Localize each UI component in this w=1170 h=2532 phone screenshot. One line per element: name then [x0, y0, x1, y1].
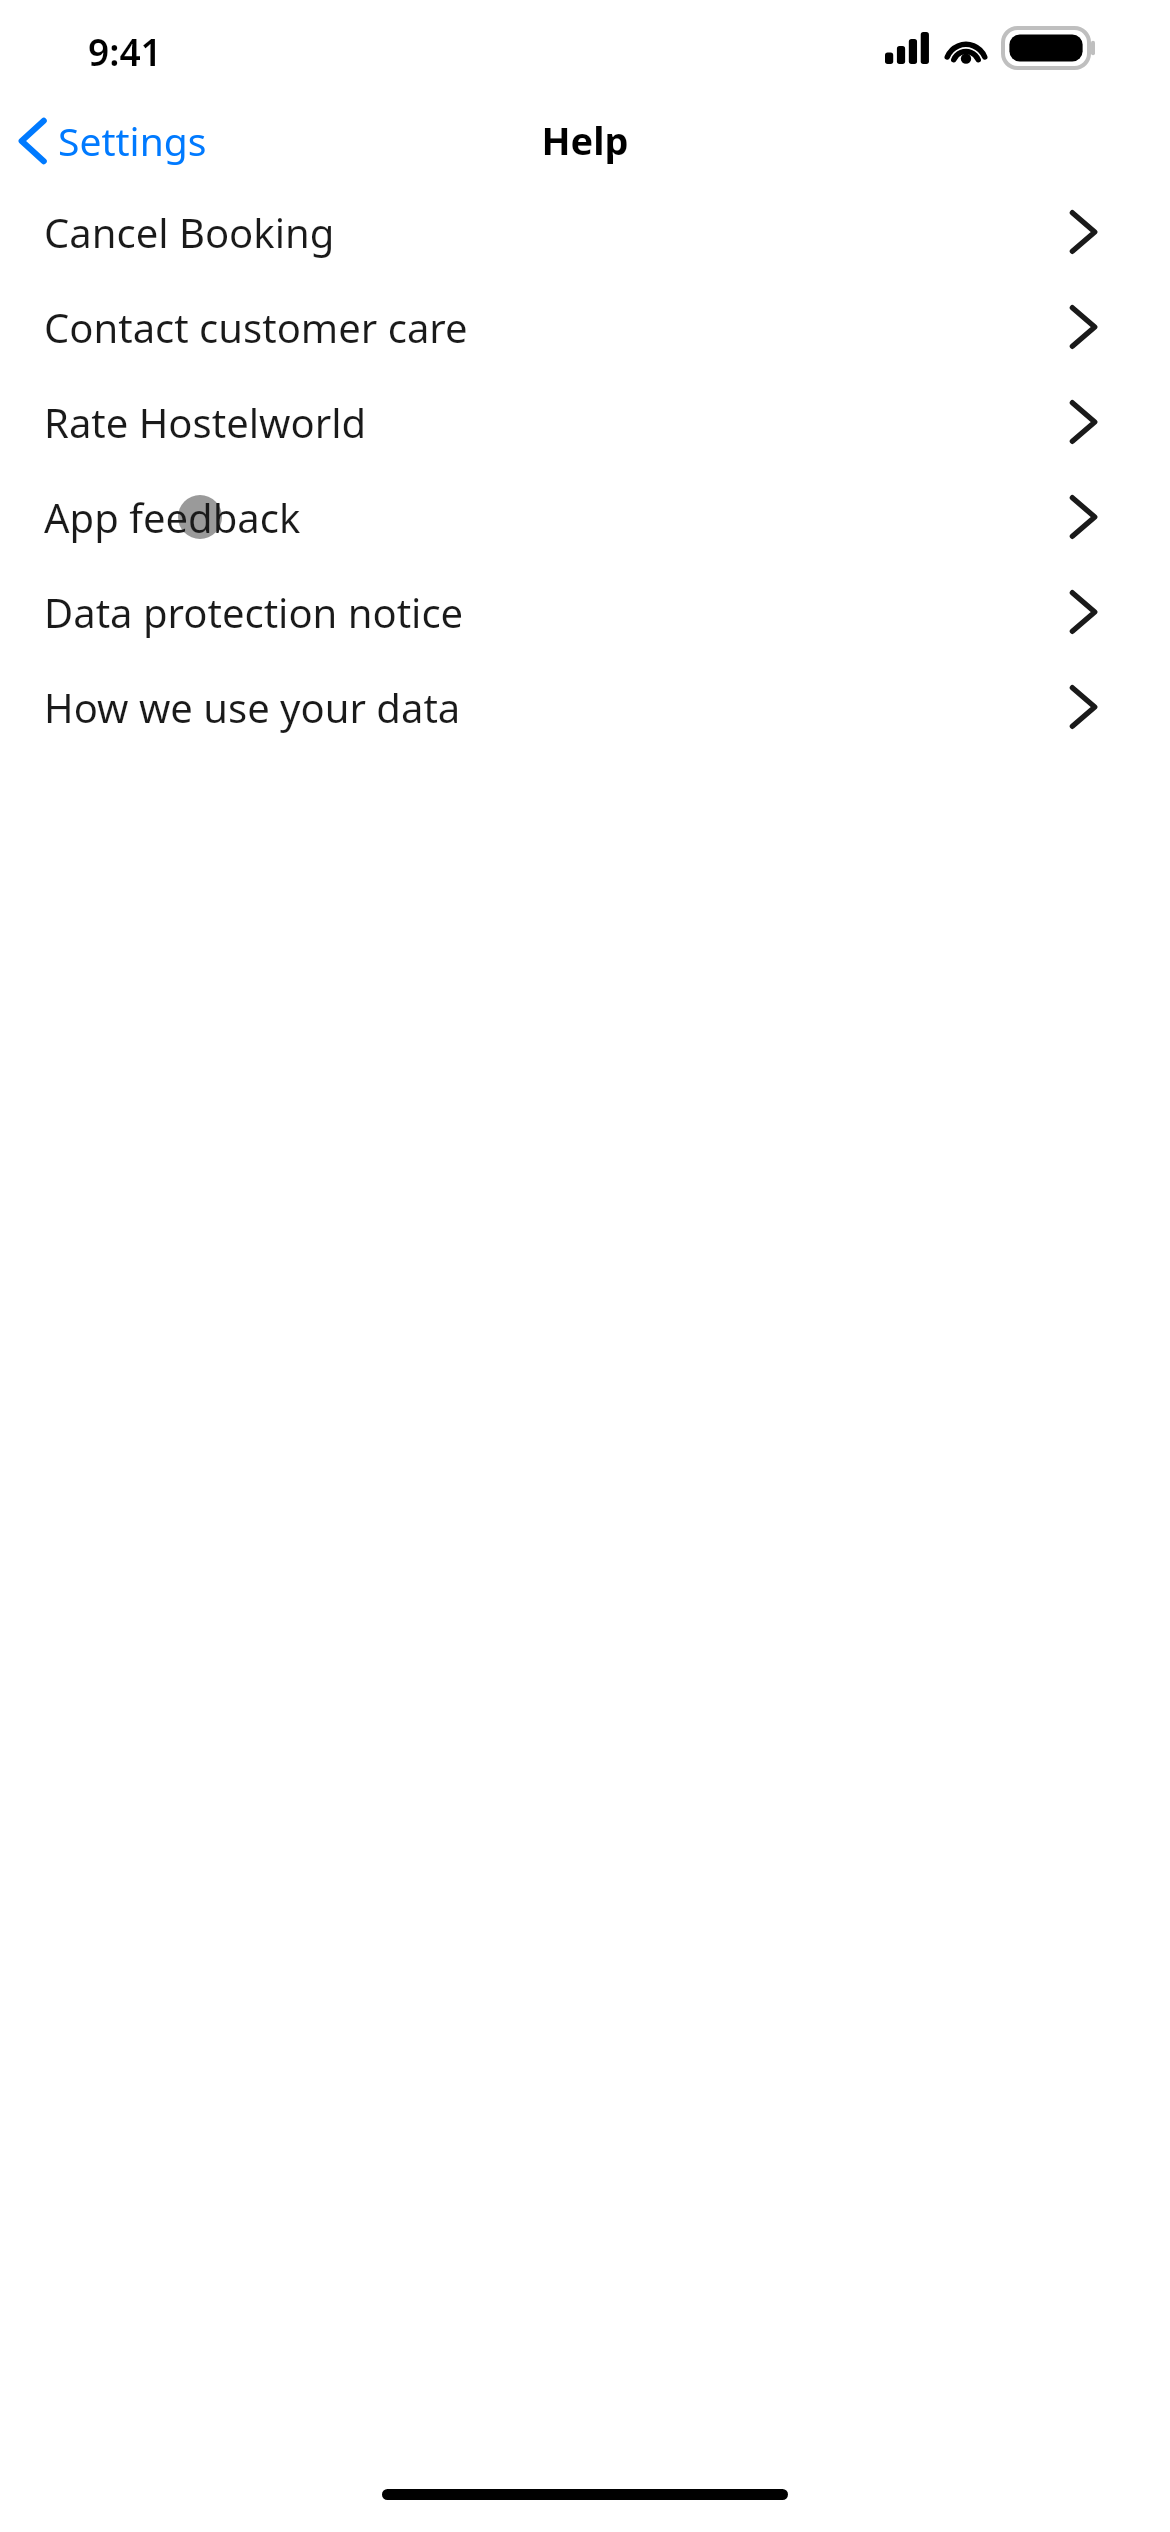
staticText: 9:41: [88, 26, 162, 76]
button[interactable]: Back: [0, 104, 229, 177]
button[interactable]: Contact customer care: [0, 279, 1170, 374]
button[interactable]: Data protection notice: [0, 564, 1170, 659]
button[interactable]: App feedback: [0, 469, 1170, 564]
staticText: Settings: [58, 114, 207, 167]
button[interactable]: How we use your data: [0, 659, 1170, 754]
staticText: Help: [541, 114, 629, 166]
other: Back: [18, 118, 48, 164]
staticText: App feedback: [44, 490, 301, 544]
staticText: How we use your data: [44, 680, 461, 734]
button[interactable]: Cancel Booking: [0, 184, 1170, 279]
button[interactable]: Rate Hostelworld: [0, 374, 1170, 469]
staticText: Data protection notice: [44, 585, 464, 639]
staticText: Cancel Booking: [44, 205, 335, 259]
staticText: Contact customer care: [44, 300, 468, 354]
staticText: Rate Hostelworld: [44, 395, 367, 449]
